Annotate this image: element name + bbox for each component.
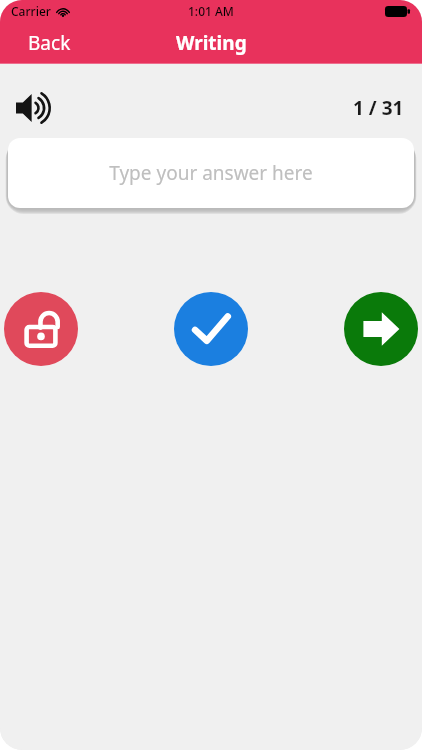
- button[interactable]: Back: [18, 26, 81, 60]
- button[interactable]: Check answer: [174, 292, 248, 366]
- button[interactable]: Unlock answer: [4, 292, 78, 366]
- button[interactable]: Next: [344, 292, 418, 366]
- button[interactable]: Type your answer here: [8, 138, 414, 208]
- staticText: 1 / 31: [353, 95, 404, 121]
- staticText: Writing: [176, 30, 247, 56]
- staticText: Back: [28, 30, 71, 56]
- staticText: Type your answer here: [109, 160, 313, 186]
- staticText: Carrier: [11, 3, 51, 19]
- button[interactable]: Play audio: [12, 90, 60, 126]
- staticText: 1:01 AM: [188, 3, 234, 19]
